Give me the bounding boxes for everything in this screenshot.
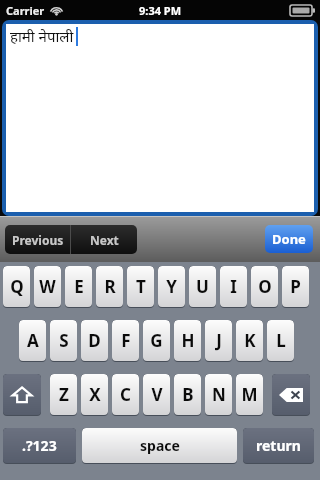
- button[interactable]: A: [19, 320, 46, 362]
- button[interactable]: Q: [3, 266, 30, 308]
- staticText: 9:34 PM: [139, 3, 182, 18]
- button[interactable]: हामी नेपाली: [6, 24, 314, 212]
- button[interactable]: B: [174, 374, 201, 416]
- staticText: F: [121, 329, 131, 352]
- staticText: M: [241, 383, 258, 406]
- staticText: T: [136, 275, 146, 298]
- staticText: I: [230, 275, 237, 298]
- button[interactable]: X: [81, 374, 108, 416]
- staticText: W: [39, 275, 56, 298]
- staticText: A: [27, 329, 39, 352]
- staticText: U: [196, 275, 209, 298]
- staticText: X: [89, 383, 101, 406]
- staticText: Y: [166, 275, 177, 298]
- staticText: L: [276, 329, 286, 352]
- button[interactable]: S: [50, 320, 77, 362]
- staticText: P: [290, 275, 301, 298]
- staticText: Next: [90, 232, 119, 248]
- staticText: D: [88, 329, 101, 352]
- button[interactable]: M: [236, 374, 263, 416]
- button[interactable]: N: [205, 374, 232, 416]
- button[interactable]: O: [251, 266, 278, 308]
- button[interactable]: H: [174, 320, 201, 362]
- button[interactable]: .?123: [3, 428, 76, 464]
- button[interactable]: Backspace: [272, 374, 310, 416]
- staticText: S: [59, 329, 69, 352]
- button[interactable]: W: [34, 266, 61, 308]
- button[interactable]: G: [143, 320, 170, 362]
- staticText: return: [256, 436, 301, 455]
- button[interactable]: K: [236, 320, 263, 362]
- staticText: E: [74, 275, 84, 298]
- button[interactable]: space: [82, 428, 237, 464]
- button[interactable]: Next: [71, 225, 137, 254]
- button[interactable]: J: [205, 320, 232, 362]
- button[interactable]: P: [282, 266, 309, 308]
- staticText: Q: [10, 275, 24, 298]
- button[interactable]: Y: [158, 266, 185, 308]
- staticText: R: [104, 275, 116, 298]
- button[interactable]: T: [127, 266, 154, 308]
- staticText: O: [258, 275, 272, 298]
- button[interactable]: C: [112, 374, 139, 416]
- staticText: B: [182, 383, 194, 406]
- staticText: Previous: [12, 232, 64, 248]
- staticText: .?123: [22, 436, 57, 455]
- button[interactable]: Previous: [5, 225, 70, 254]
- staticText: space: [140, 436, 180, 455]
- button[interactable]: F: [112, 320, 139, 362]
- staticText: हामी नेपाली: [10, 26, 74, 46]
- button[interactable]: Shift: [3, 374, 41, 416]
- staticText: V: [151, 383, 163, 406]
- button[interactable]: Z: [50, 374, 77, 416]
- button[interactable]: V: [143, 374, 170, 416]
- staticText: Z: [59, 383, 69, 406]
- button[interactable]: E: [65, 266, 92, 308]
- staticText: N: [212, 383, 226, 406]
- button[interactable]: Done: [265, 225, 313, 253]
- staticText: Done: [272, 230, 306, 248]
- button[interactable]: L: [267, 320, 294, 362]
- staticText: C: [120, 383, 131, 406]
- button[interactable]: R: [96, 266, 123, 308]
- button[interactable]: D: [81, 320, 108, 362]
- staticText: J: [216, 329, 222, 352]
- staticText: Carrier: [6, 3, 45, 18]
- staticText: G: [150, 329, 163, 352]
- button[interactable]: return: [243, 428, 314, 464]
- button[interactable]: I: [220, 266, 247, 308]
- staticText: H: [181, 329, 195, 352]
- button[interactable]: U: [189, 266, 216, 308]
- staticText: K: [244, 329, 256, 352]
